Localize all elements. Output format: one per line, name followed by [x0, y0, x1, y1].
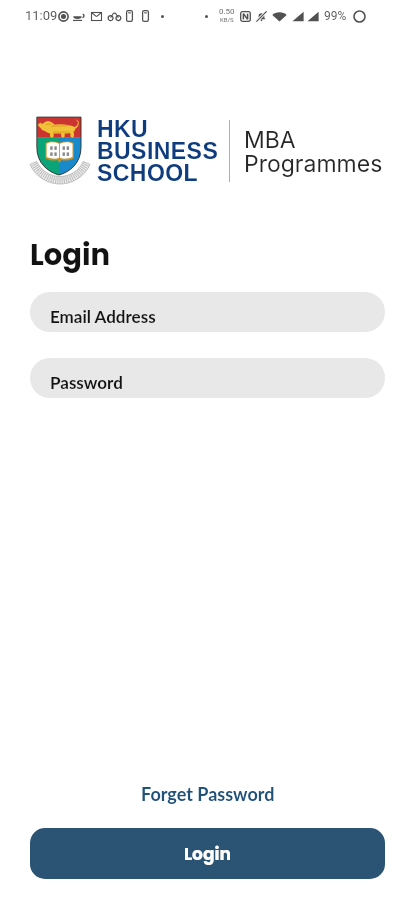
staticText: Password — [50, 372, 123, 392]
staticText: Login — [30, 235, 111, 276]
staticText: KB/S — [220, 16, 234, 23]
staticText: Login — [184, 842, 231, 866]
button[interactable]: Login — [30, 828, 385, 879]
staticText: HKU BUSINESS SCHOOL — [97, 116, 219, 185]
button[interactable]: Password — [30, 358, 385, 398]
staticText: Email Address — [50, 306, 156, 326]
button[interactable]: Forget Password — [131, 780, 285, 808]
staticText: Forget Password — [141, 783, 275, 805]
staticText: MBA Programmes — [244, 126, 383, 178]
staticText: 0.50 — [219, 7, 235, 16]
button[interactable]: Email Address — [30, 292, 385, 332]
staticText: 11:09 — [25, 8, 58, 23]
staticText: 99% — [324, 9, 347, 23]
